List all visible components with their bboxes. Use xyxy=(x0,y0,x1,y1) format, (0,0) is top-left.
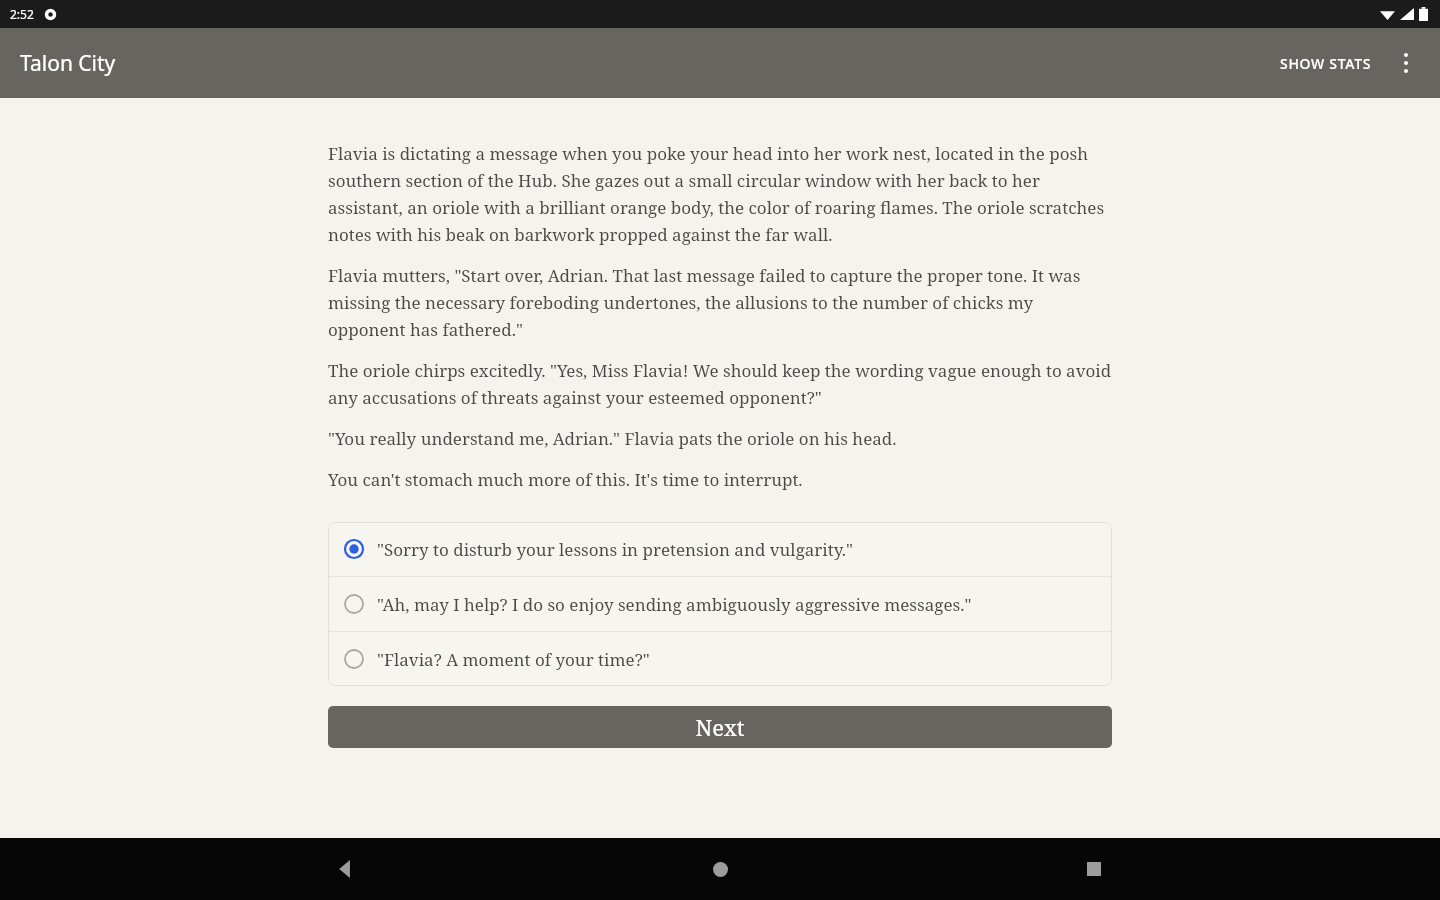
button[interactable]: Recent apps xyxy=(1066,841,1122,897)
staticText: Next xyxy=(695,712,745,742)
staticText: Flavia mutters, "Start over, Adrian. Tha… xyxy=(328,264,1112,341)
staticText: 2:52 xyxy=(10,6,34,22)
button[interactable]: SHOW STATS xyxy=(1270,42,1382,85)
staticText: The oriole chirps excitedly. "Yes, Miss … xyxy=(328,359,1112,409)
staticText: "Ah, may I help? I do so enjoy sending a… xyxy=(377,593,972,616)
button[interactable]: More options xyxy=(1382,39,1430,87)
staticText: "Sorry to disturb your lessons in preten… xyxy=(377,538,854,561)
button[interactable]: Home xyxy=(692,841,748,897)
button[interactable]: "Sorry to disturb your lessons in preten… xyxy=(328,522,1112,576)
staticText: "Flavia? A moment of your time?" xyxy=(377,648,650,671)
button[interactable]: "Flavia? A moment of your time?" xyxy=(328,632,1112,686)
staticText: You can't stomach much more of this. It'… xyxy=(328,468,803,491)
staticText: Flavia is dictating a message when you p… xyxy=(328,142,1112,246)
staticText: SHOW STATS xyxy=(1280,54,1372,73)
staticText: Talon City xyxy=(20,49,116,78)
button[interactable]: Back xyxy=(318,841,374,897)
staticText: "You really understand me, Adrian." Flav… xyxy=(328,427,897,450)
button[interactable]: Next xyxy=(328,706,1112,748)
button[interactable]: "Ah, may I help? I do so enjoy sending a… xyxy=(328,577,1112,631)
